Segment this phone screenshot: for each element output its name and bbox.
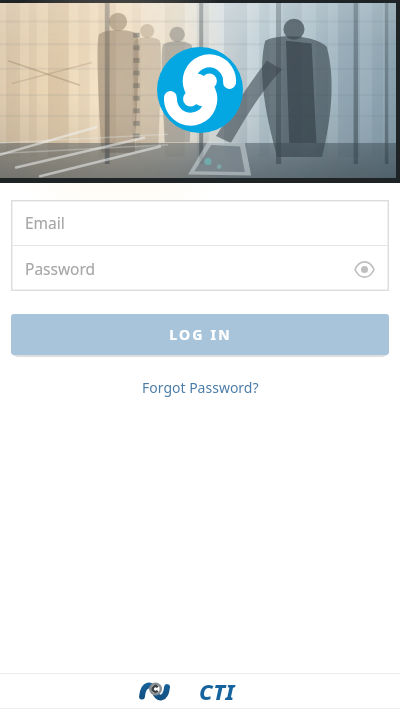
staticText: CTI xyxy=(199,676,235,706)
button[interactable]: Show password xyxy=(349,254,379,284)
staticText: Forgot Password? xyxy=(142,378,259,397)
button[interactable]: Password xyxy=(11,246,389,291)
staticText: Password xyxy=(25,258,96,279)
staticText: LOG IN xyxy=(169,325,232,344)
button[interactable]: Email xyxy=(11,200,389,245)
button[interactable]: LOG IN xyxy=(11,314,389,355)
button[interactable]: Forgot Password? xyxy=(132,374,269,401)
staticText: Email xyxy=(25,212,65,233)
